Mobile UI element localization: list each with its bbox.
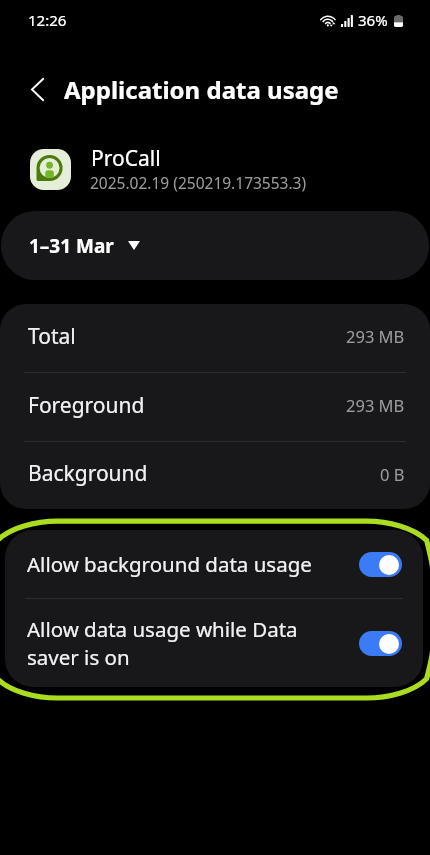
staticText: 12:26: [28, 10, 67, 30]
staticText: Background: [28, 459, 148, 488]
staticText: 0 B: [380, 463, 405, 485]
staticText: 2025.02.19 (250219.173553.3): [90, 172, 307, 193]
staticText: Total: [28, 322, 76, 351]
button[interactable]: Total: [0, 304, 430, 372]
staticText: ProCall: [91, 144, 161, 173]
staticText: 293 MB: [346, 325, 405, 347]
button[interactable]: Allow background data usage: [5, 530, 423, 598]
staticText: 1–31 Mar: [29, 233, 114, 259]
staticText: 293 MB: [346, 394, 405, 416]
staticText: 36%: [358, 10, 388, 30]
staticText: Allow background data usage: [27, 550, 312, 578]
button[interactable]: Toggle on: [359, 631, 402, 656]
button[interactable]: Toggle on: [359, 552, 402, 577]
button[interactable]: Back: [13, 68, 61, 112]
button[interactable]: 1–31 Mar: [1, 211, 429, 280]
button[interactable]: Allow data usage while Data saver is on: [5, 599, 423, 687]
button[interactable]: Foreground: [0, 373, 430, 441]
staticText: Foreground: [28, 391, 145, 420]
button[interactable]: Background: [0, 442, 430, 509]
staticText: Allow data usage while Data saver is on: [27, 615, 298, 671]
staticText: Application data usage: [64, 73, 339, 106]
